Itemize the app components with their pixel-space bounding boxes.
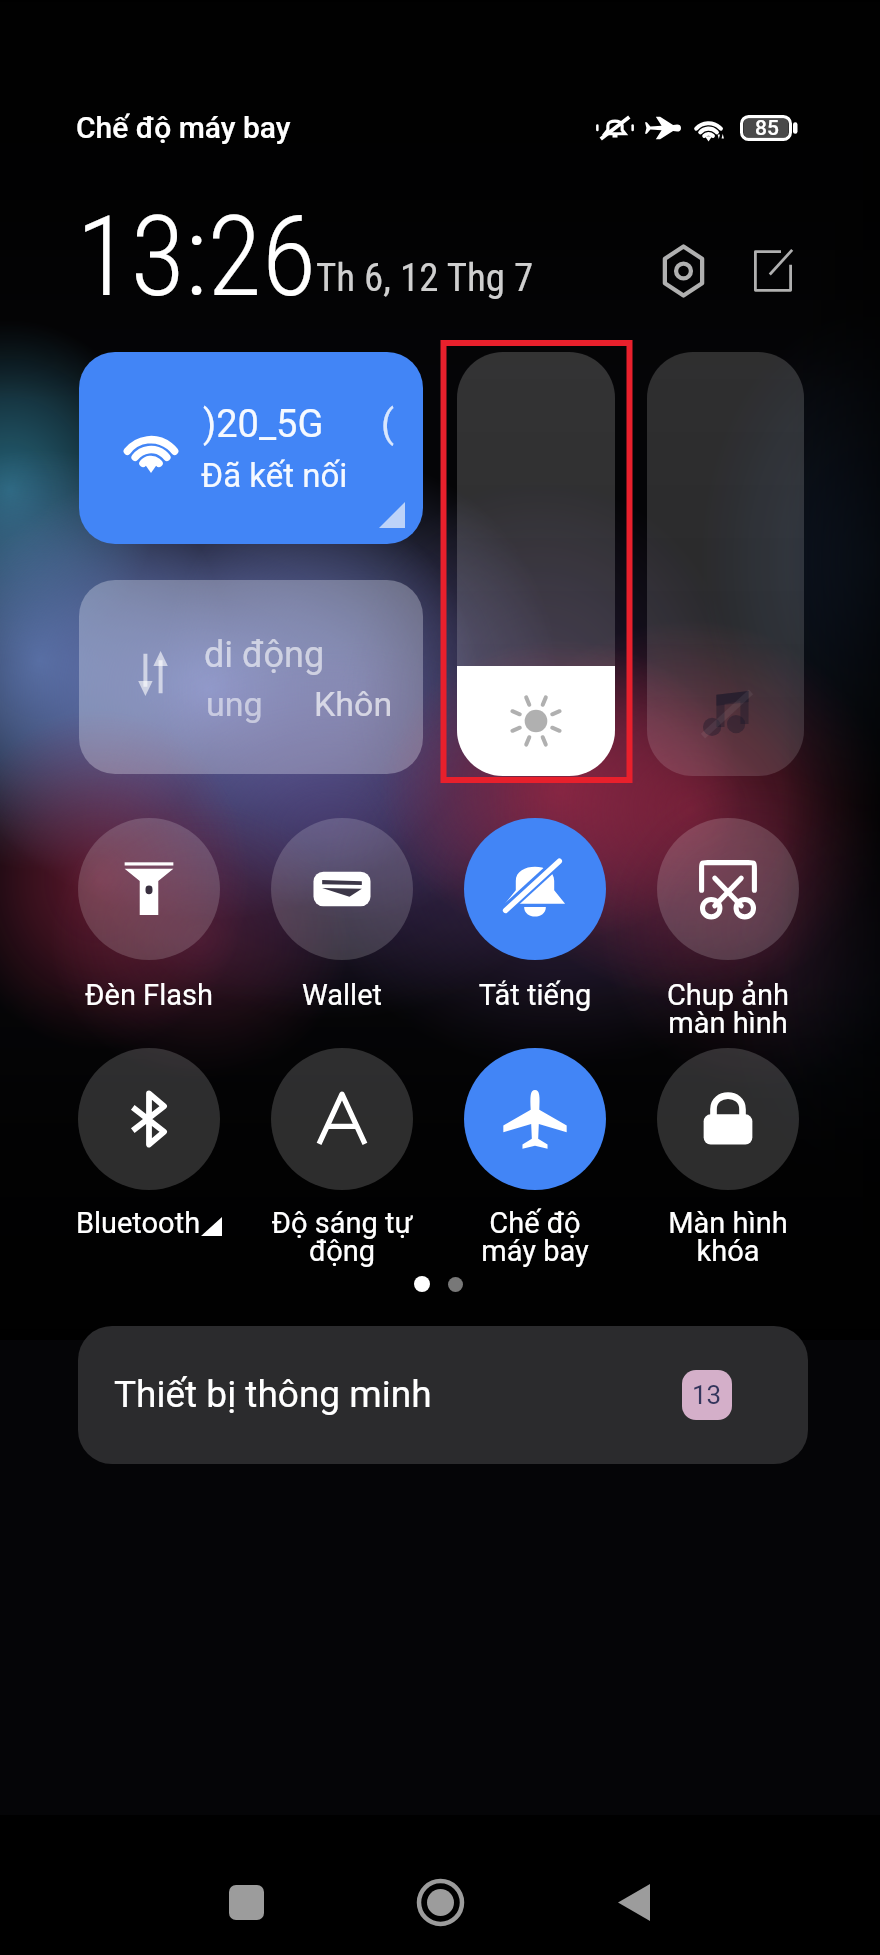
staticText: Chế độ máy bay	[76, 110, 291, 145]
button[interactable]: Chế độ máy bay	[435, 1048, 635, 1286]
button[interactable]: Chup ảnh màn hình	[628, 818, 828, 1058]
staticText: Đèn Flash	[49, 978, 249, 1012]
staticText: )20_5G	[203, 402, 324, 447]
staticText: 85	[755, 116, 779, 141]
button[interactable]: Edit	[738, 236, 808, 306]
button[interactable]: Back	[572, 1849, 696, 1955]
button[interactable]: Thiết bị thông minh	[78, 1326, 808, 1464]
button[interactable]: Đèn Flash	[49, 818, 249, 1058]
button[interactable]: Bluetooth	[49, 1048, 249, 1286]
staticText: Đã kết nối	[201, 456, 348, 495]
button[interactable]: Màn hình khóa	[628, 1048, 828, 1286]
button[interactable]: )20_5G	[79, 352, 423, 544]
button[interactable]: Tắt tiếng	[435, 818, 635, 1058]
staticText: Tắt tiếng	[435, 978, 635, 1012]
staticText: Wallet	[242, 978, 442, 1012]
staticText: (	[381, 402, 395, 447]
staticText: Th 6, 12 Thg 7	[316, 255, 534, 301]
staticText: Bluetooth	[38, 1206, 238, 1240]
button[interactable]: Settings	[648, 236, 718, 306]
staticText: di động	[204, 634, 325, 676]
button[interactable]: di động	[79, 580, 423, 774]
staticText: Màn hình khóa	[628, 1206, 828, 1268]
staticText: Khôn	[314, 684, 393, 724]
staticText: 13:26	[76, 191, 317, 322]
button[interactable]: Home	[378, 1849, 502, 1955]
button[interactable]: Độ sáng tự động	[242, 1048, 442, 1286]
button[interactable]: Volume	[647, 352, 804, 776]
button[interactable]: Wallet	[242, 818, 442, 1058]
staticText: ung	[206, 684, 263, 724]
button[interactable]: Recent apps	[184, 1849, 308, 1955]
staticText: Độ sáng tự động	[242, 1206, 442, 1268]
staticText: Thiết bị thông minh	[114, 1373, 432, 1416]
staticText: Chế độ máy bay	[435, 1206, 635, 1268]
staticText: 13	[692, 1380, 722, 1410]
button[interactable]: Brightness	[457, 352, 615, 776]
staticText: Chup ảnh màn hình	[628, 978, 828, 1040]
